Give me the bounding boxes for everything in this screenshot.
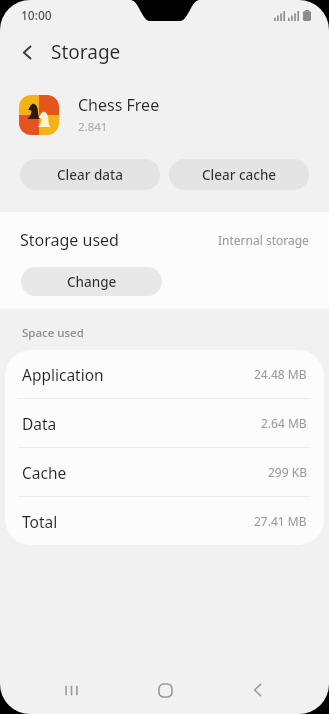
button[interactable]: Home — [142, 667, 188, 713]
button[interactable]: Total — [5, 497, 324, 545]
button[interactable]: Clear cache — [169, 159, 309, 190]
button[interactable]: Back — [235, 667, 281, 713]
staticText: Internal storage — [218, 232, 309, 248]
staticText: Change — [67, 273, 117, 291]
button[interactable]: Data — [5, 399, 324, 447]
staticText: 2.64 MB — [261, 415, 307, 431]
staticText: 10:00 — [21, 7, 52, 23]
staticText: Space used — [22, 325, 84, 341]
staticText: Data — [22, 413, 57, 434]
button[interactable]: Cache — [5, 448, 324, 496]
staticText: 27.41 MB — [254, 513, 307, 529]
staticText: Chess Free — [78, 94, 160, 116]
staticText: Storage used — [20, 229, 119, 251]
staticText: 24.48 MB — [254, 366, 307, 382]
staticText: Clear cache — [202, 166, 277, 184]
button[interactable]: Change — [21, 267, 162, 296]
button[interactable]: Clear data — [20, 159, 160, 190]
button[interactable]: Application — [5, 350, 324, 398]
button[interactable]: Recents — [48, 667, 94, 713]
staticText: Clear data — [57, 166, 123, 184]
staticText: Cache — [22, 462, 67, 483]
button[interactable]: Navigate up — [10, 35, 44, 69]
staticText: Total — [22, 511, 58, 532]
staticText: 2.841 — [78, 119, 108, 135]
staticText: 299 KB — [268, 464, 307, 480]
staticText: Application — [22, 364, 104, 385]
staticText: Storage — [51, 39, 121, 65]
